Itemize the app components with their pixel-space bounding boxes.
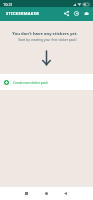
button[interactable]: Back — [59, 187, 72, 200]
button[interactable]: Share — [61, 8, 72, 19]
button[interactable]: Home — [40, 187, 53, 200]
staticText: You don't have any stickers yet. — [12, 31, 78, 37]
staticText: 10:21 — [3, 2, 13, 7]
staticText: Create new sticker pack — [13, 80, 48, 84]
button[interactable]: Backup — [81, 8, 92, 19]
button[interactable]: Help — [71, 8, 82, 19]
staticText: Start by creating your first sticker pac… — [18, 38, 77, 42]
staticText: STICKERMAKER — [6, 11, 39, 16]
button[interactable]: Recents — [20, 187, 33, 200]
button[interactable]: Create new sticker pack — [0, 74, 93, 90]
